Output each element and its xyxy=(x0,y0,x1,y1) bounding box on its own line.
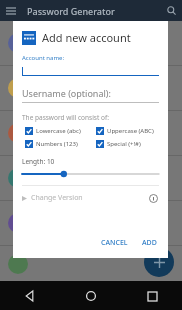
staticText: Length: 10 xyxy=(22,157,55,166)
staticText: Special (+!#) xyxy=(107,140,141,148)
staticText: Numbers (123) xyxy=(36,140,78,148)
staticText: Add new account xyxy=(42,30,131,45)
button[interactable]: CANCEL xyxy=(96,234,133,252)
button[interactable]: Info xyxy=(147,192,159,204)
staticText: Account name: xyxy=(22,54,65,62)
button[interactable]: Lowercase (abc) xyxy=(25,127,96,135)
button[interactable]: ADD xyxy=(137,234,162,252)
button[interactable] xyxy=(0,156,182,200)
button[interactable]: Numbers (123) xyxy=(25,140,96,148)
button[interactable]: Recents xyxy=(138,282,166,310)
button[interactable] xyxy=(22,169,159,179)
button[interactable]: Special (+!#) xyxy=(96,140,168,148)
staticText: Password Generator xyxy=(27,5,115,17)
button[interactable]: Home xyxy=(77,282,105,310)
button[interactable] xyxy=(0,111,182,155)
button[interactable]: Change Version xyxy=(22,192,159,204)
button[interactable]: Menu xyxy=(0,0,21,21)
staticText: Username (optional): xyxy=(22,87,111,99)
button[interactable] xyxy=(0,66,182,110)
button[interactable] xyxy=(0,201,182,245)
button[interactable]: Username (optional): xyxy=(22,87,159,103)
button[interactable]: Account name: xyxy=(22,54,159,76)
button[interactable] xyxy=(0,21,182,65)
staticText: ADD xyxy=(142,238,157,248)
button[interactable]: Back xyxy=(16,282,44,310)
button[interactable]: Uppercase (ABC) xyxy=(96,127,168,135)
staticText: Uppercase (ABC) xyxy=(107,127,154,135)
staticText: Change Version xyxy=(31,193,83,203)
button[interactable]: Add account xyxy=(144,247,174,277)
staticText: Lowercase (abc) xyxy=(36,127,81,135)
staticText: CANCEL xyxy=(101,238,128,248)
button[interactable]: Search xyxy=(161,0,182,21)
button[interactable] xyxy=(0,246,182,281)
staticText: The password will consist of: xyxy=(22,113,109,122)
